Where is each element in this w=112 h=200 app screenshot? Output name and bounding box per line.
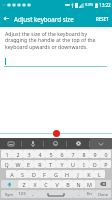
button[interactable]: X	[29, 180, 40, 188]
button[interactable]: 4	[34, 150, 45, 158]
button[interactable]: Hide keyboard	[90, 138, 112, 149]
button[interactable]: U	[67, 160, 78, 168]
button[interactable]: R	[34, 160, 45, 168]
button[interactable]: 1	[1, 150, 12, 158]
staticText: Q	[4, 161, 9, 168]
staticText: E	[27, 161, 30, 168]
staticText: D	[32, 171, 36, 178]
staticText: 8	[82, 151, 86, 158]
button[interactable]: O	[89, 160, 100, 168]
button[interactable]: 7	[67, 150, 78, 158]
staticText: R	[38, 161, 42, 168]
staticText: A	[10, 171, 14, 178]
button[interactable]: S	[17, 170, 28, 178]
staticText: O	[92, 161, 97, 168]
staticText: T	[49, 161, 52, 168]
button[interactable]: 8	[78, 150, 89, 158]
staticText: X	[33, 181, 37, 188]
staticText: S	[21, 171, 24, 178]
button[interactable]: J	[72, 170, 83, 178]
button[interactable]: 3	[23, 150, 34, 158]
staticText: .	[78, 191, 80, 198]
button[interactable]: Shift	[1, 180, 18, 188]
button[interactable]: Space	[38, 190, 74, 198]
staticText: 4	[38, 151, 42, 158]
staticText: 6	[60, 151, 64, 158]
staticText: 3	[27, 151, 31, 158]
staticText: U	[71, 161, 75, 168]
button[interactable]: ,	[28, 190, 38, 198]
button[interactable]: Done	[95, 190, 111, 198]
staticText: Y	[60, 161, 64, 168]
button[interactable]: P	[100, 160, 111, 168]
button[interactable]: L	[94, 170, 105, 178]
staticText: P	[104, 161, 108, 168]
button[interactable]: T	[45, 160, 56, 168]
staticText: L	[98, 171, 101, 178]
staticText: J	[77, 171, 79, 178]
staticText: Done	[98, 192, 108, 197]
staticText: Adjust the size of the keyboard by dragg…	[5, 30, 107, 51]
staticText: Z	[22, 181, 26, 188]
button[interactable]: 5	[45, 150, 56, 158]
button[interactable]: En	[84, 190, 95, 198]
staticText: B	[66, 181, 70, 188]
button[interactable]: Resize keyboard handle	[0, 129, 112, 138]
button[interactable]: Settings	[67, 138, 89, 149]
button[interactable]: N	[73, 180, 84, 188]
staticText: Sym	[5, 192, 13, 197]
staticText: C	[44, 181, 48, 188]
button[interactable]: Backspace	[95, 180, 111, 188]
staticText: ,	[32, 191, 34, 198]
button[interactable]: Voice input	[22, 138, 43, 149]
button[interactable]: Emoji	[44, 138, 66, 149]
button[interactable]: Y	[56, 160, 67, 168]
button[interactable]: 9	[89, 150, 100, 158]
staticText: 5	[49, 151, 53, 158]
button[interactable]: V	[51, 180, 62, 188]
staticText: I	[83, 161, 85, 168]
button[interactable]: 6	[56, 150, 67, 158]
staticText: 7	[71, 151, 75, 158]
staticText: 2	[16, 151, 20, 158]
button[interactable]: .	[74, 190, 84, 198]
button[interactable]: K	[83, 170, 94, 178]
button[interactable]: Q	[1, 160, 12, 168]
staticText: En	[87, 191, 92, 197]
staticText: Adjust keyboard size	[14, 15, 74, 23]
staticText: H	[65, 171, 69, 178]
button[interactable]: D	[28, 170, 39, 178]
button[interactable]: 2	[12, 150, 23, 158]
button[interactable]: H	[61, 170, 72, 178]
button[interactable]: F	[39, 170, 50, 178]
button[interactable]: Back	[0, 12, 13, 25]
button[interactable]: RESET	[95, 14, 110, 24]
button[interactable]: W	[12, 160, 23, 168]
button[interactable]: 0	[100, 150, 111, 158]
staticText: N	[76, 181, 81, 188]
button[interactable]: A	[6, 170, 17, 178]
staticText: 9	[93, 151, 97, 158]
staticText: M	[87, 181, 92, 188]
staticText: K	[87, 171, 91, 178]
staticText: V	[55, 181, 59, 188]
staticText: 1	[5, 151, 9, 158]
staticText: 123	[18, 191, 26, 197]
staticText: W	[15, 161, 21, 168]
button[interactable]: I	[78, 160, 89, 168]
button[interactable]: B	[62, 180, 73, 188]
button[interactable]: 123	[16, 190, 28, 198]
staticText: 13:22	[99, 2, 111, 8]
button[interactable]: E	[23, 160, 34, 168]
staticText: 53%	[85, 2, 94, 8]
staticText: 0	[104, 151, 108, 158]
button[interactable]: Clipboard	[0, 138, 21, 149]
button[interactable]: G	[50, 170, 61, 178]
staticText: RESET	[96, 16, 109, 22]
staticText: G	[54, 171, 58, 178]
button[interactable]: C	[40, 180, 51, 188]
staticText: F	[43, 171, 46, 178]
button[interactable]: M	[84, 180, 95, 188]
button[interactable]: Z	[18, 180, 29, 188]
button[interactable]: Sym	[1, 190, 16, 198]
